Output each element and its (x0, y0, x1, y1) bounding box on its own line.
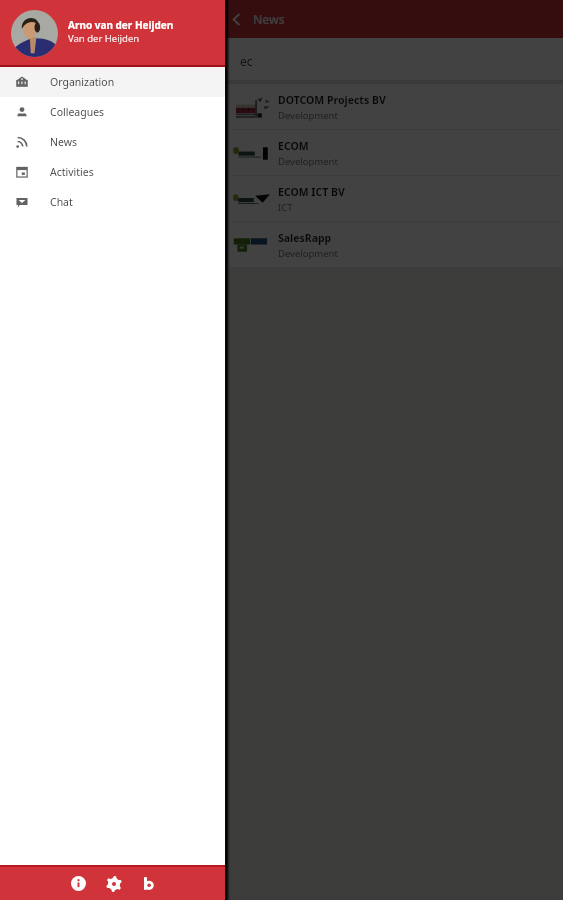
button[interactable]: Profile photo (11, 10, 58, 57)
staticText: ICT (278, 201, 293, 214)
button[interactable]: Info (64, 869, 93, 898)
staticText: Chat (50, 195, 73, 209)
button[interactable]: Chat (0, 187, 225, 217)
staticText: Development (278, 247, 338, 260)
staticText: DOTCOM Projects BV (278, 93, 386, 107)
staticText: Development (278, 109, 338, 122)
staticText: Van der Heijden (68, 32, 140, 45)
button[interactable]: Settings (99, 869, 128, 898)
staticText: ec (240, 53, 253, 69)
staticText: Activities (50, 165, 94, 179)
staticText: News (50, 135, 77, 149)
staticText: Arno van der Heijden (68, 18, 174, 32)
staticText: ECOM (278, 139, 309, 153)
staticText: ECOM ICT BV (278, 185, 345, 199)
button[interactable]: Organization (0, 67, 225, 97)
button[interactable]: Close navigation drawer (225, 0, 563, 900)
button[interactable]: Brand (134, 869, 163, 898)
staticText: News (253, 11, 285, 27)
button[interactable]: SalesRapp (225, 222, 563, 268)
button[interactable]: Colleagues (0, 97, 225, 127)
staticText: Organization (50, 75, 115, 89)
button[interactable]: ECOM ICT BV (225, 176, 563, 222)
button[interactable]: ECOM (225, 130, 563, 176)
button[interactable]: News (0, 127, 225, 157)
staticText: SalesRapp (278, 231, 332, 245)
staticText: Colleagues (50, 105, 105, 119)
button[interactable]: Activities (0, 157, 225, 187)
staticText: Development (278, 155, 338, 168)
button[interactable]: DOTCOM Projects BV (225, 84, 563, 130)
button[interactable]: Back (225, 0, 247, 38)
button[interactable]: ec (225, 38, 563, 80)
